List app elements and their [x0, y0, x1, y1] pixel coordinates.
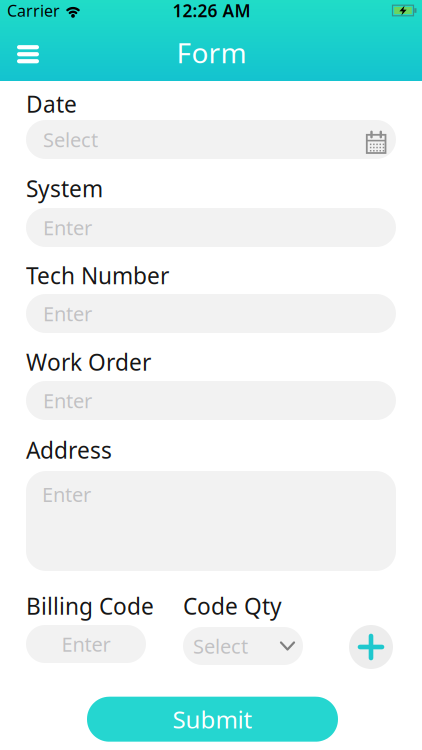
button[interactable]: Enter — [26, 208, 396, 247]
staticText: Address — [26, 435, 112, 465]
button[interactable]: Enter — [26, 294, 396, 333]
staticText: Form — [176, 34, 246, 71]
staticText: Submit — [172, 703, 252, 735]
button[interactable]: Submit — [87, 697, 338, 742]
button[interactable]: Menu — [6, 34, 50, 74]
staticText: Code Qty — [183, 591, 282, 621]
button[interactable]: Enter — [26, 381, 396, 420]
button[interactable]: Select — [183, 627, 303, 665]
staticText: Select — [193, 633, 248, 659]
button[interactable]: Select — [26, 120, 396, 159]
staticText: Tech Number — [26, 260, 169, 290]
staticText: Carrier — [7, 0, 60, 21]
staticText: Date — [26, 89, 77, 119]
staticText: Billing Code — [26, 591, 154, 621]
staticText: Enter — [43, 300, 92, 327]
staticText: 12:26 AM — [172, 0, 250, 22]
button[interactable]: Enter — [26, 471, 396, 571]
button[interactable]: Add — [349, 625, 393, 669]
staticText: Select — [43, 126, 98, 153]
staticText: Enter — [43, 214, 92, 241]
staticText: Enter — [42, 481, 91, 508]
staticText: Work Order — [26, 347, 151, 377]
staticText: System — [26, 173, 103, 203]
staticText: Enter — [43, 387, 92, 414]
staticText: Enter — [61, 631, 110, 657]
button[interactable]: Enter — [26, 625, 146, 663]
